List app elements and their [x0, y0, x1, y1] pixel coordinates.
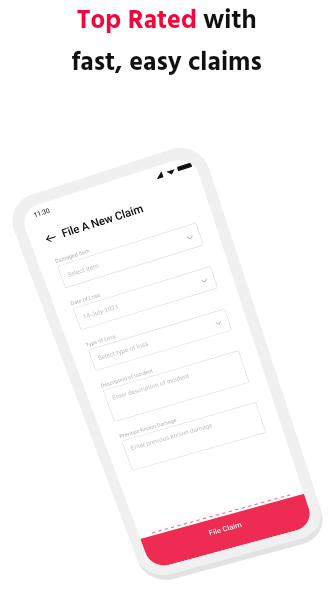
staticText: Enter previous known damage: [130, 421, 214, 452]
staticText: Description of Incident: [100, 367, 154, 388]
staticText: File Claim: [208, 520, 243, 537]
staticText: Date of Loss: [70, 292, 101, 306]
button[interactable]: Back: [42, 230, 59, 246]
staticText: Previous Known Damage: [118, 417, 178, 439]
button[interactable]: Enter description of incident: [102, 350, 250, 422]
staticText: Damaged Item: [54, 248, 91, 264]
staticText: 11:30: [33, 206, 52, 219]
staticText: Top Rated with: [76, 1, 257, 43]
staticText: Enter description of incident: [111, 372, 191, 402]
staticText: 14-July-2021: [82, 302, 120, 321]
button[interactable]: 14-July-2021: [72, 266, 218, 330]
button[interactable]: Select type of loss: [88, 308, 232, 371]
staticText: File A New Claim: [60, 202, 146, 240]
button[interactable]: Select item: [57, 222, 204, 289]
button[interactable]: File Claim: [140, 494, 314, 569]
staticText: Select item: [66, 262, 100, 279]
staticText: Type of Loss: [85, 333, 117, 348]
button[interactable]: Enter previous known damage: [121, 402, 266, 471]
staticText: fast, easy claims: [71, 43, 262, 85]
staticText: Select type of loss: [97, 340, 149, 362]
